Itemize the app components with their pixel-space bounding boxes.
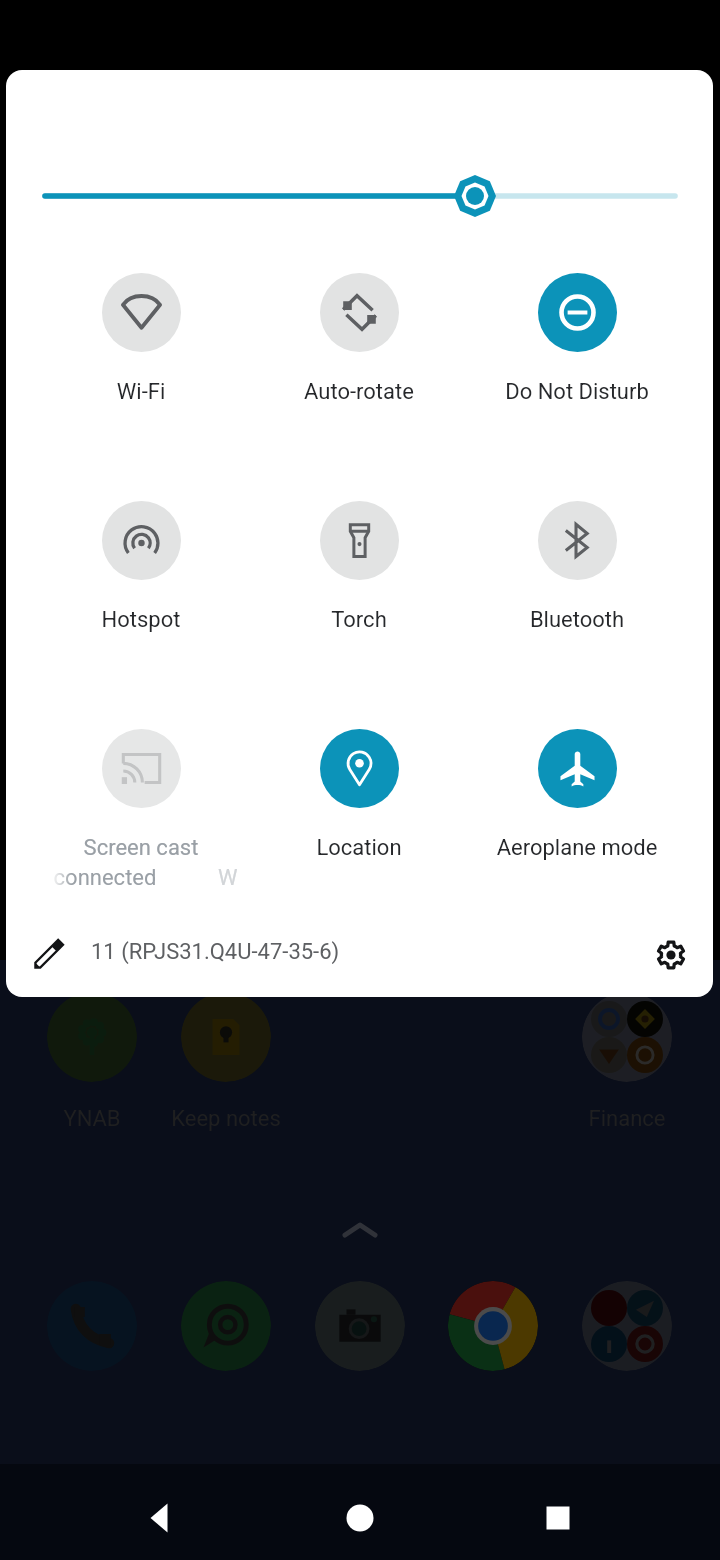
staticText: Auto-rotate [250,379,468,405]
button[interactable]: Keep notes [181,992,271,1082]
staticText: Hotspot [32,607,250,633]
button[interactable]: Location [250,723,468,873]
staticText: Torch [250,607,468,633]
button[interactable]: WhatsApp [181,1281,271,1371]
button[interactable]: Bluetooth [468,495,686,645]
button[interactable]: Chrome [448,1281,538,1371]
button[interactable]: Screen cast [32,723,250,873]
staticText: 11 (RPJS31.Q4U-47-35-6) [91,939,340,965]
button[interactable]: Social [582,1281,672,1371]
button[interactable]: Home [330,1488,390,1548]
staticText: connected [6,865,214,891]
staticText: Aeroplane mode [468,835,686,861]
button[interactable]: Recents [528,1488,588,1548]
staticText: Finance [517,1106,720,1132]
button[interactable]: Finance [582,992,672,1082]
staticText: YNAB [0,1106,202,1132]
button[interactable]: Edit [24,931,72,979]
button[interactable]: Torch [250,495,468,645]
button[interactable]: Auto-rotate [250,267,468,417]
staticText: Location [250,835,468,861]
button[interactable]: Brightness [16,170,713,222]
staticText: Bluetooth [468,607,686,633]
button[interactable]: Settings [647,931,695,979]
staticText: Do Not Disturb [468,379,686,405]
staticText: Screen cast [32,835,250,861]
button[interactable]: YNAB [47,992,137,1082]
button[interactable]: Phone [47,1281,137,1371]
button[interactable]: Back [130,1488,190,1548]
button[interactable]: Hotspot [32,495,250,645]
staticText: W [218,865,238,891]
button[interactable]: Camera [315,1281,405,1371]
button[interactable]: Do Not Disturb [468,267,686,417]
button[interactable]: Wi-Fi [32,267,250,417]
staticText: Keep notes [116,1106,336,1132]
staticText: Wi-Fi [32,379,250,405]
button[interactable]: Aeroplane mode [468,723,686,873]
